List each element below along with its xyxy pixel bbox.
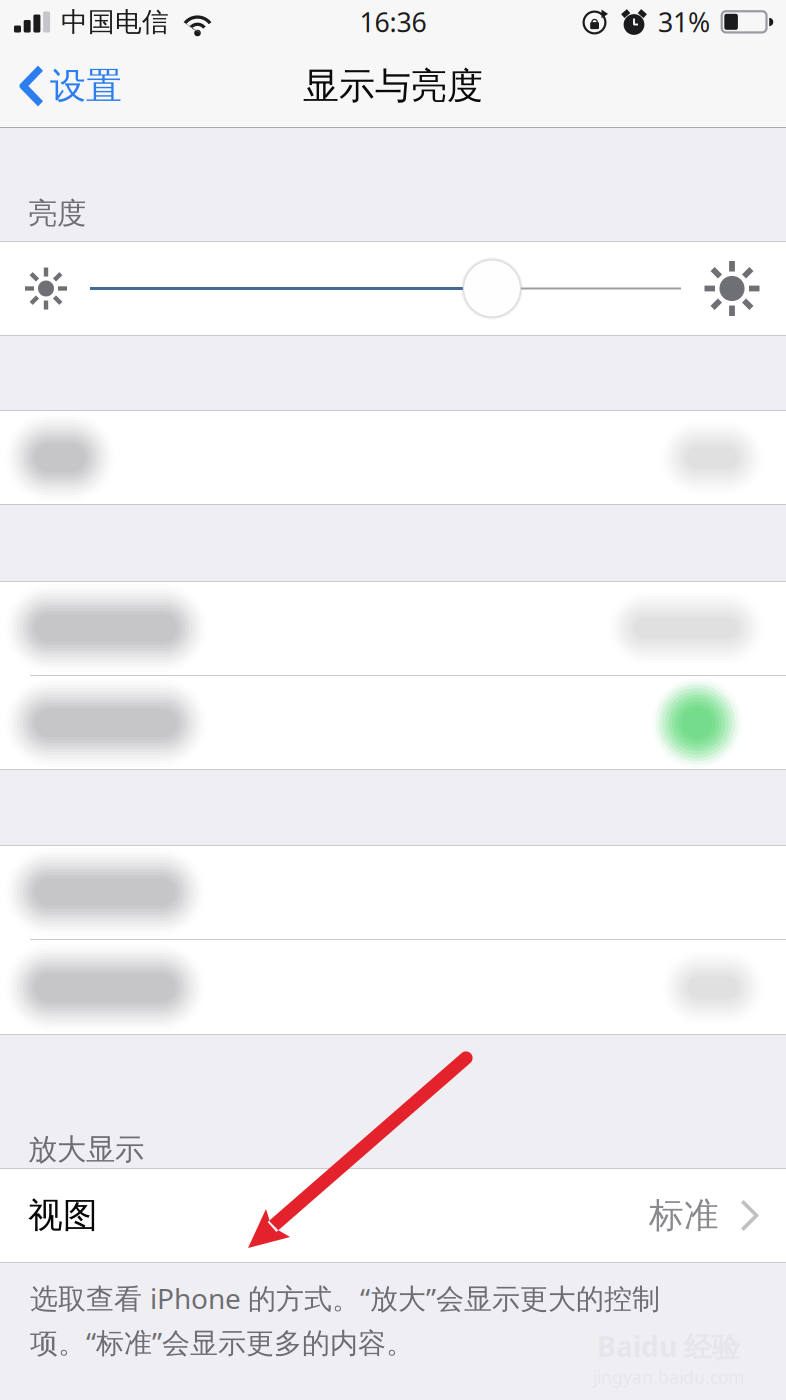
staticText: 放大显示	[28, 1131, 144, 1168]
button[interactable]: 设置	[0, 44, 142, 128]
staticText: 视图	[28, 1194, 98, 1237]
staticText: 选取查看 iPhone 的方式。“放大”会显示更大的控制	[30, 1279, 660, 1317]
staticText: 16:36	[359, 4, 426, 40]
staticText: 亮度	[28, 195, 86, 232]
staticText: 项。“标准”会显示更多的内容。	[30, 1323, 414, 1361]
staticText: Baidu 经验	[597, 1327, 740, 1365]
button[interactable]: 视图	[0, 1168, 786, 1263]
staticText: 31%	[658, 4, 710, 40]
staticText: 中国电信	[61, 5, 169, 39]
staticText: 显示与亮度	[303, 63, 483, 109]
staticText: 标准	[649, 1194, 719, 1237]
staticText: 设置	[50, 63, 122, 109]
